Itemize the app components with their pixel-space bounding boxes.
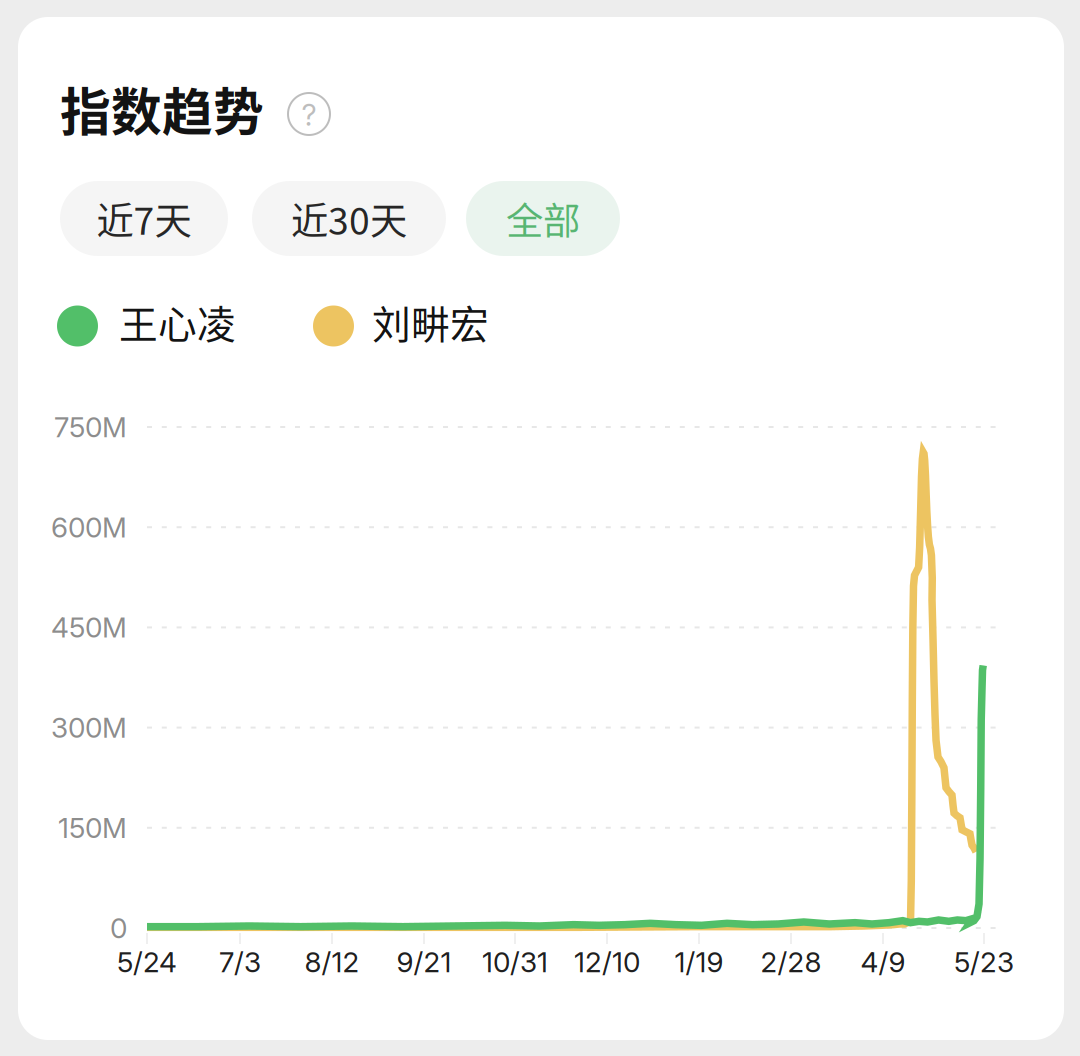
button[interactable]: 指数趋势说明	[285, 90, 333, 138]
staticText: 2/28	[760, 945, 821, 979]
staticText: 7/3	[219, 945, 261, 979]
staticText: 指数趋势	[60, 72, 264, 145]
staticText: 750M	[54, 410, 127, 444]
staticText: 王心凌	[119, 294, 236, 350]
staticText: 12/10	[574, 945, 640, 979]
button[interactable]: 全部	[466, 181, 620, 256]
staticText: 1/19	[674, 945, 723, 979]
staticText: 0	[110, 911, 127, 945]
staticText: 150M	[58, 811, 127, 845]
staticText: 10/31	[482, 945, 548, 979]
staticText: 600M	[51, 510, 127, 544]
staticText: ?	[301, 97, 316, 133]
staticText: 8/12	[304, 945, 359, 979]
button[interactable]: 近30天	[252, 181, 446, 256]
staticText: 全部	[506, 191, 580, 246]
staticText: 4/9	[860, 945, 905, 979]
staticText: 300M	[51, 711, 127, 745]
staticText: 刘畊宏	[372, 294, 489, 350]
staticText: 450M	[51, 610, 127, 644]
staticText: 近7天	[96, 191, 191, 246]
staticText: 5/24	[117, 945, 177, 979]
button[interactable]: 近7天	[60, 181, 228, 256]
staticText: 5/23	[954, 945, 1014, 979]
staticText: 近30天	[291, 191, 407, 246]
staticText: 9/21	[396, 945, 451, 979]
